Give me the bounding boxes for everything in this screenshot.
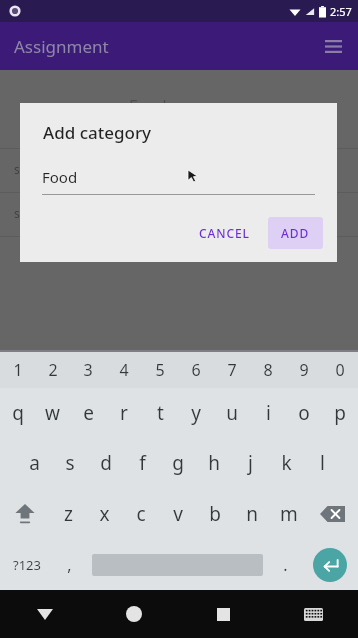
button[interactable]: o [286, 388, 322, 438]
staticText: t [157, 400, 164, 426]
staticText: f [139, 450, 146, 476]
button[interactable]: m [270, 488, 307, 539]
staticText: g [172, 450, 184, 476]
staticText: 9 [299, 359, 309, 381]
staticText: 7 [227, 359, 237, 381]
button[interactable]: 3 [70, 352, 106, 388]
staticText: k [281, 450, 292, 476]
staticText: CANCEL [199, 225, 250, 241]
button[interactable]: Backspace [307, 488, 358, 539]
staticText: 6 [191, 359, 201, 381]
staticText: 5 [155, 359, 165, 381]
staticText: 4 [119, 359, 129, 381]
staticText: u [226, 400, 238, 426]
staticText: a [29, 450, 40, 476]
staticText: j [248, 450, 253, 476]
button[interactable]: l [304, 438, 340, 488]
button[interactable]: a [17, 438, 52, 488]
staticText: p [334, 400, 346, 426]
staticText: 2 [48, 359, 58, 381]
staticText: . [283, 554, 288, 576]
button[interactable]: j [232, 438, 268, 488]
staticText: Add category [43, 121, 152, 144]
staticText: s [14, 161, 20, 177]
button[interactable]: u [214, 388, 250, 438]
button[interactable]: d [88, 438, 124, 488]
staticText: y [191, 400, 201, 426]
button[interactable]: z [50, 488, 86, 539]
button[interactable]: s [52, 438, 88, 488]
staticText: Food [129, 95, 167, 117]
staticText: q [12, 400, 24, 426]
button[interactable]: 4 [106, 352, 142, 388]
staticText: v [173, 501, 183, 527]
button[interactable]: Food [42, 167, 315, 195]
button[interactable]: f [124, 438, 160, 488]
staticText: , [67, 554, 72, 576]
button[interactable]: 8 [250, 352, 286, 388]
staticText: s [14, 205, 20, 221]
button[interactable]: Space [85, 539, 269, 590]
button[interactable]: . [269, 539, 301, 590]
button[interactable]: 9 [286, 352, 322, 388]
staticText: d [100, 450, 112, 476]
button[interactable]: Recents [178, 590, 268, 638]
button[interactable]: x [86, 488, 122, 539]
button[interactable]: e [70, 388, 106, 438]
button[interactable]: b [196, 488, 233, 539]
staticText: r [120, 400, 128, 426]
staticText: e [83, 400, 94, 426]
button[interactable]: c [122, 488, 159, 539]
button[interactable]: Menu [316, 29, 350, 63]
button[interactable]: w [35, 388, 70, 438]
button[interactable]: n [233, 488, 270, 539]
staticText: i [266, 400, 271, 426]
staticText: 8 [263, 359, 273, 381]
button[interactable]: 5 [142, 352, 178, 388]
staticText: ADD [281, 225, 310, 241]
staticText: z [64, 501, 73, 527]
staticText: o [298, 400, 310, 426]
staticText: s [65, 450, 75, 476]
staticText: h [208, 450, 220, 476]
staticText: 1 [13, 359, 23, 381]
button[interactable]: ?123 [0, 539, 53, 590]
staticText: x [99, 501, 110, 527]
button[interactable]: v [159, 488, 196, 539]
button[interactable]: Enter [301, 539, 358, 590]
button[interactable]: Switch keyboard [268, 590, 358, 638]
staticText: 0 [335, 359, 345, 381]
staticText: 2:57 [330, 4, 352, 19]
button[interactable]: 0 [322, 352, 358, 388]
button[interactable]: Shift [0, 488, 50, 539]
button[interactable]: h [196, 438, 232, 488]
button[interactable]: 7 [214, 352, 250, 388]
staticText: 3 [83, 359, 93, 381]
button[interactable]: ADD [268, 217, 323, 249]
button[interactable]: Back [0, 590, 89, 638]
button[interactable]: t [142, 388, 178, 438]
staticText: Assignment [14, 35, 109, 58]
button[interactable]: i [250, 388, 286, 438]
staticText: w [45, 400, 60, 426]
button[interactable]: g [160, 438, 196, 488]
button[interactable]: p [322, 388, 358, 438]
button[interactable]: y [178, 388, 214, 438]
button[interactable]: 1 [0, 352, 35, 388]
button[interactable]: Home [89, 590, 178, 638]
staticText: ?123 [13, 556, 41, 574]
button[interactable]: r [106, 388, 142, 438]
button[interactable]: 6 [178, 352, 214, 388]
button[interactable]: 2 [35, 352, 70, 388]
button[interactable]: , [53, 539, 85, 590]
button[interactable]: k [268, 438, 304, 488]
staticText: m [280, 501, 298, 527]
staticText: b [209, 501, 221, 527]
button[interactable]: CANCEL [187, 217, 262, 249]
staticText: c [136, 501, 146, 527]
staticText: Food [42, 167, 78, 187]
staticText: n [246, 501, 258, 527]
button[interactable]: q [0, 388, 35, 438]
staticText: l [320, 450, 325, 476]
